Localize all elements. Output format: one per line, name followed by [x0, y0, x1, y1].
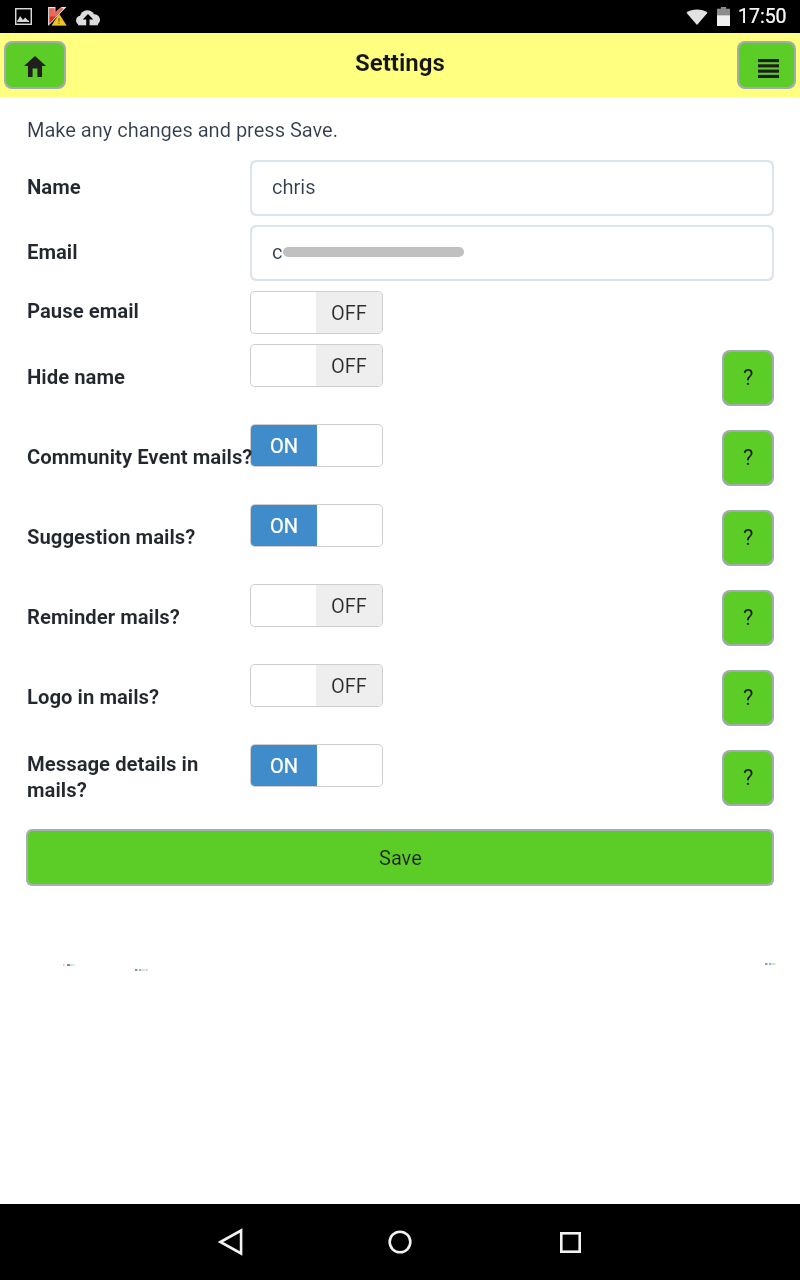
staticText: Hide name — [27, 365, 125, 389]
staticText: Make any changes and press Save. — [27, 118, 338, 141]
staticText: Reminder mails? — [27, 605, 180, 629]
button[interactable]: Help — [724, 352, 772, 404]
button[interactable]: ON — [251, 425, 382, 466]
staticText: Suggestion mails? — [27, 525, 196, 549]
staticText: OFF — [331, 301, 367, 324]
button[interactable]: Home — [6, 43, 64, 87]
button[interactable]: Home — [345, 1204, 455, 1280]
staticText: ON — [270, 514, 299, 537]
button[interactable]: Help — [724, 512, 772, 564]
button[interactable]: Help — [724, 592, 772, 644]
staticText: ? — [743, 605, 754, 631]
button[interactable]: OFF — [251, 665, 382, 706]
button[interactable]: Help — [724, 752, 772, 804]
staticText: Message details in mails? — [27, 752, 254, 802]
button[interactable]: chris — [252, 162, 772, 214]
staticText: Community Event mails? — [27, 445, 253, 469]
button[interactable]: ON — [251, 505, 382, 546]
staticText: Save — [379, 846, 422, 869]
staticText: OFF — [331, 354, 367, 377]
button[interactable]: Help — [724, 672, 772, 724]
button[interactable]: Save — [28, 831, 772, 884]
button[interactable]: OFF — [251, 585, 382, 626]
staticText: ON — [270, 754, 299, 777]
button[interactable]: Help — [724, 432, 772, 484]
button[interactable]: Back — [176, 1204, 286, 1280]
staticText: c — [272, 240, 283, 263]
button[interactable]: Menu — [739, 43, 794, 87]
staticText: ? — [743, 445, 754, 471]
staticText: 17:50 — [738, 5, 787, 28]
button[interactable]: OFF — [251, 292, 382, 333]
staticText: Settings — [355, 49, 445, 77]
staticText: OFF — [331, 674, 367, 697]
button[interactable]: Recents — [515, 1204, 625, 1280]
staticText: ? — [743, 525, 754, 551]
staticText: Logo in mails? — [27, 685, 160, 709]
button[interactable]: c — [252, 227, 772, 279]
staticText: OFF — [331, 594, 367, 617]
button[interactable]: ON — [251, 745, 382, 786]
staticText: ? — [743, 685, 754, 711]
staticText: chris — [272, 175, 316, 198]
staticText: ? — [743, 765, 754, 791]
staticText: Name — [27, 175, 81, 199]
button[interactable]: OFF — [251, 345, 382, 386]
staticText: ? — [743, 365, 754, 391]
staticText: ON — [270, 434, 299, 457]
staticText: Email — [27, 240, 78, 264]
staticText: Pause email — [27, 299, 139, 323]
